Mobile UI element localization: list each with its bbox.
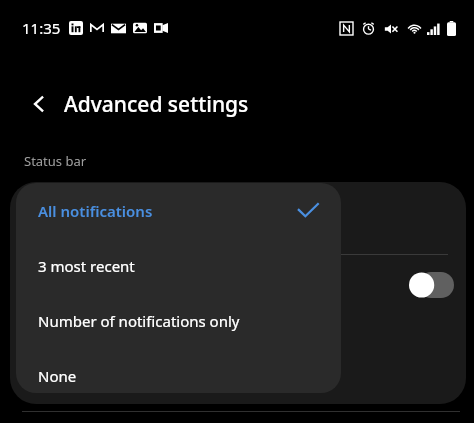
button[interactable]: All notifications <box>16 183 341 238</box>
button[interactable]: None <box>16 348 341 393</box>
button[interactable]: Back <box>20 85 58 123</box>
button[interactable]: 3 most recent <box>16 238 341 293</box>
staticText: Status bar <box>24 152 87 170</box>
staticText: 3 most recent <box>38 256 319 276</box>
button[interactable]: Toggle setting <box>10 254 466 316</box>
button[interactable]: Number of notifications only <box>16 293 341 348</box>
staticText: None <box>38 366 319 386</box>
staticText: All notifications <box>38 201 297 221</box>
staticText: Advanced settings <box>64 90 249 119</box>
staticText: Number of notifications only <box>38 311 319 331</box>
staticText: 11:35 <box>22 18 61 38</box>
